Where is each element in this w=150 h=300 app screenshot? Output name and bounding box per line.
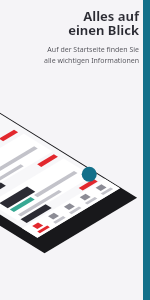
staticText: Alles auf einen Blick: [68, 7, 139, 39]
staticText: Auf der Startseite finden Sie alle wicht…: [44, 45, 139, 65]
